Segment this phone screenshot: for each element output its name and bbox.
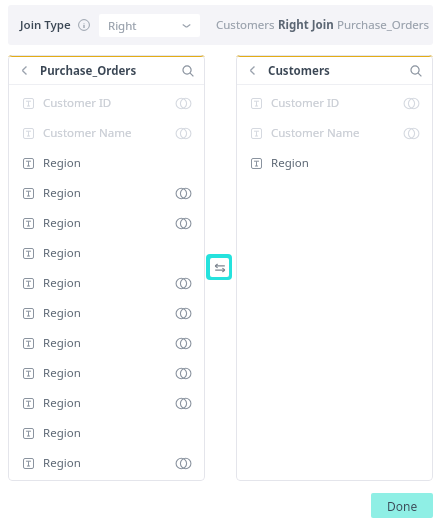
staticText: Customer Name xyxy=(271,125,360,141)
staticText: Region xyxy=(43,155,81,171)
staticText: Purchase_Orders xyxy=(334,17,430,33)
button[interactable]: Region xyxy=(8,298,205,328)
staticText: Region xyxy=(271,155,309,171)
staticText: Right xyxy=(108,18,137,34)
staticText: Purchase_Orders xyxy=(40,63,137,79)
staticText: Region xyxy=(43,245,81,261)
button[interactable]: Customer Name xyxy=(8,118,205,148)
button[interactable]: Region xyxy=(8,208,205,238)
button[interactable]: Region xyxy=(8,418,205,448)
staticText: Region xyxy=(43,455,81,471)
button[interactable]: Region xyxy=(236,148,433,178)
staticText: Customer ID xyxy=(43,95,112,111)
staticText: Region xyxy=(43,215,81,231)
staticText: Customers xyxy=(268,63,330,79)
other: Back xyxy=(19,65,30,76)
button[interactable]: Region xyxy=(8,358,205,388)
button[interactable]: Customer ID xyxy=(8,88,205,118)
button[interactable]: Region xyxy=(8,148,205,178)
staticText: Right Join xyxy=(278,17,334,33)
button[interactable]: Back xyxy=(236,57,433,84)
button[interactable]: Back xyxy=(8,57,205,84)
button[interactable]: Region xyxy=(8,328,205,358)
button[interactable]: Region xyxy=(8,448,205,478)
button[interactable]: Region xyxy=(8,268,205,298)
button[interactable]: Done xyxy=(371,493,433,518)
button[interactable]: Info xyxy=(77,18,91,32)
staticText: Region xyxy=(43,305,81,321)
staticText: Join Type xyxy=(20,17,71,33)
staticText: Customer ID xyxy=(271,95,340,111)
staticText: Region xyxy=(43,425,81,441)
button[interactable]: Customer ID xyxy=(236,88,433,118)
staticText: Region xyxy=(43,185,81,201)
other: Back xyxy=(247,65,258,76)
button[interactable]: Region xyxy=(8,238,205,268)
staticText: Customer Name xyxy=(43,125,132,141)
button[interactable]: Region xyxy=(8,178,205,208)
staticText: Region xyxy=(43,335,81,351)
button[interactable]: Search xyxy=(406,61,426,81)
button[interactable]: Swap tables xyxy=(206,254,232,280)
staticText: Done xyxy=(387,498,418,514)
button[interactable]: Right xyxy=(99,14,200,37)
staticText: Customers xyxy=(216,17,278,33)
staticText: Region xyxy=(43,275,81,291)
button[interactable]: Search xyxy=(178,61,198,81)
button[interactable]: Customer Name xyxy=(236,118,433,148)
button[interactable]: Region xyxy=(8,388,205,418)
staticText: Region xyxy=(43,365,81,381)
staticText: Region xyxy=(43,395,81,411)
